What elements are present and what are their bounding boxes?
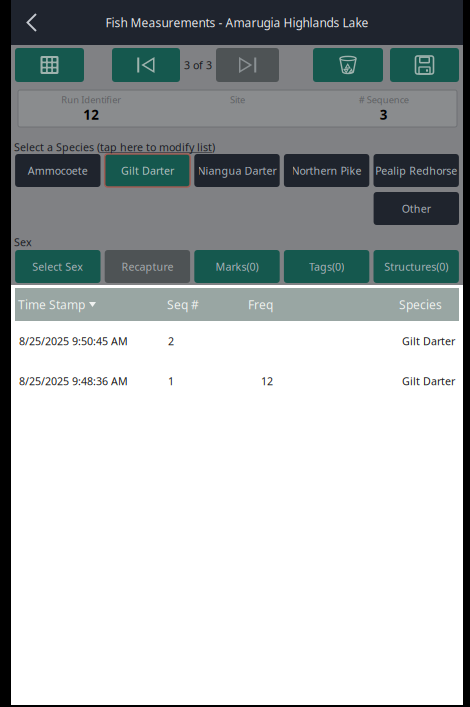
staticText: Other xyxy=(402,201,431,216)
button[interactable]: Delete xyxy=(313,48,383,82)
button[interactable]: Ammocoete xyxy=(15,154,100,187)
button[interactable]: Recapture xyxy=(105,250,190,283)
staticText: 2 xyxy=(168,334,174,348)
staticText: 3 of 3 xyxy=(184,58,212,72)
staticText: # Sequence xyxy=(359,93,409,106)
staticText: 3 xyxy=(380,106,388,123)
button[interactable]: Select Sex xyxy=(15,250,100,283)
button[interactable]: Next xyxy=(216,48,279,82)
button[interactable]: Save xyxy=(390,48,459,82)
staticText: Northern Pike xyxy=(292,163,362,178)
staticText: Gilt Darter xyxy=(402,374,455,388)
staticText: 1 xyxy=(168,374,174,388)
staticText: Gilt Darter xyxy=(121,163,174,178)
staticText: 8/25/2025 9:50:45 AM xyxy=(19,334,128,348)
button[interactable]: Gilt Darter xyxy=(105,154,190,187)
staticText: Structures(0) xyxy=(384,259,448,274)
staticText: Select Sex xyxy=(32,259,83,274)
button[interactable]: Other xyxy=(374,192,459,225)
staticText: Fish Measurements - Amarugia Highlands L… xyxy=(105,14,368,30)
button[interactable]: Niangua Darter xyxy=(194,154,280,187)
staticText: ) xyxy=(212,140,215,154)
staticText: Freq xyxy=(248,296,273,312)
staticText: Niangua Darter xyxy=(197,163,276,178)
staticText: Ammocoete xyxy=(28,163,88,178)
button[interactable]: Marks(0) xyxy=(194,250,280,283)
staticText: Seq # xyxy=(167,296,199,312)
staticText: Marks(0) xyxy=(215,259,258,274)
button[interactable]: Grid view xyxy=(15,48,84,82)
staticText: Select a Species ( xyxy=(14,140,100,154)
button[interactable]: tap here to modify list xyxy=(100,140,212,154)
staticText: Run Identifier xyxy=(61,93,121,106)
button[interactable]: Previous xyxy=(112,48,180,82)
button[interactable]: Structures(0) xyxy=(373,250,459,283)
staticText: Pealip Redhorse xyxy=(375,163,457,178)
staticText: 12 xyxy=(83,106,99,123)
staticText: Recapture xyxy=(121,259,173,274)
button[interactable]: Back xyxy=(11,0,53,45)
staticText: Tags(0) xyxy=(309,259,344,274)
staticText: Time Stamp xyxy=(18,296,85,312)
staticText: Gilt Darter xyxy=(402,334,455,348)
staticText: tap here to modify list xyxy=(100,140,212,154)
staticText: 12 xyxy=(261,374,273,388)
button[interactable]: Pealip Redhorse xyxy=(373,154,459,187)
button[interactable]: Tags(0) xyxy=(284,250,369,283)
staticText: Species xyxy=(399,296,442,312)
staticText: Site xyxy=(230,93,245,106)
button[interactable]: Northern Pike xyxy=(284,154,369,187)
staticText: Sex xyxy=(14,235,32,249)
staticText: 8/25/2025 9:48:36 AM xyxy=(19,374,128,388)
